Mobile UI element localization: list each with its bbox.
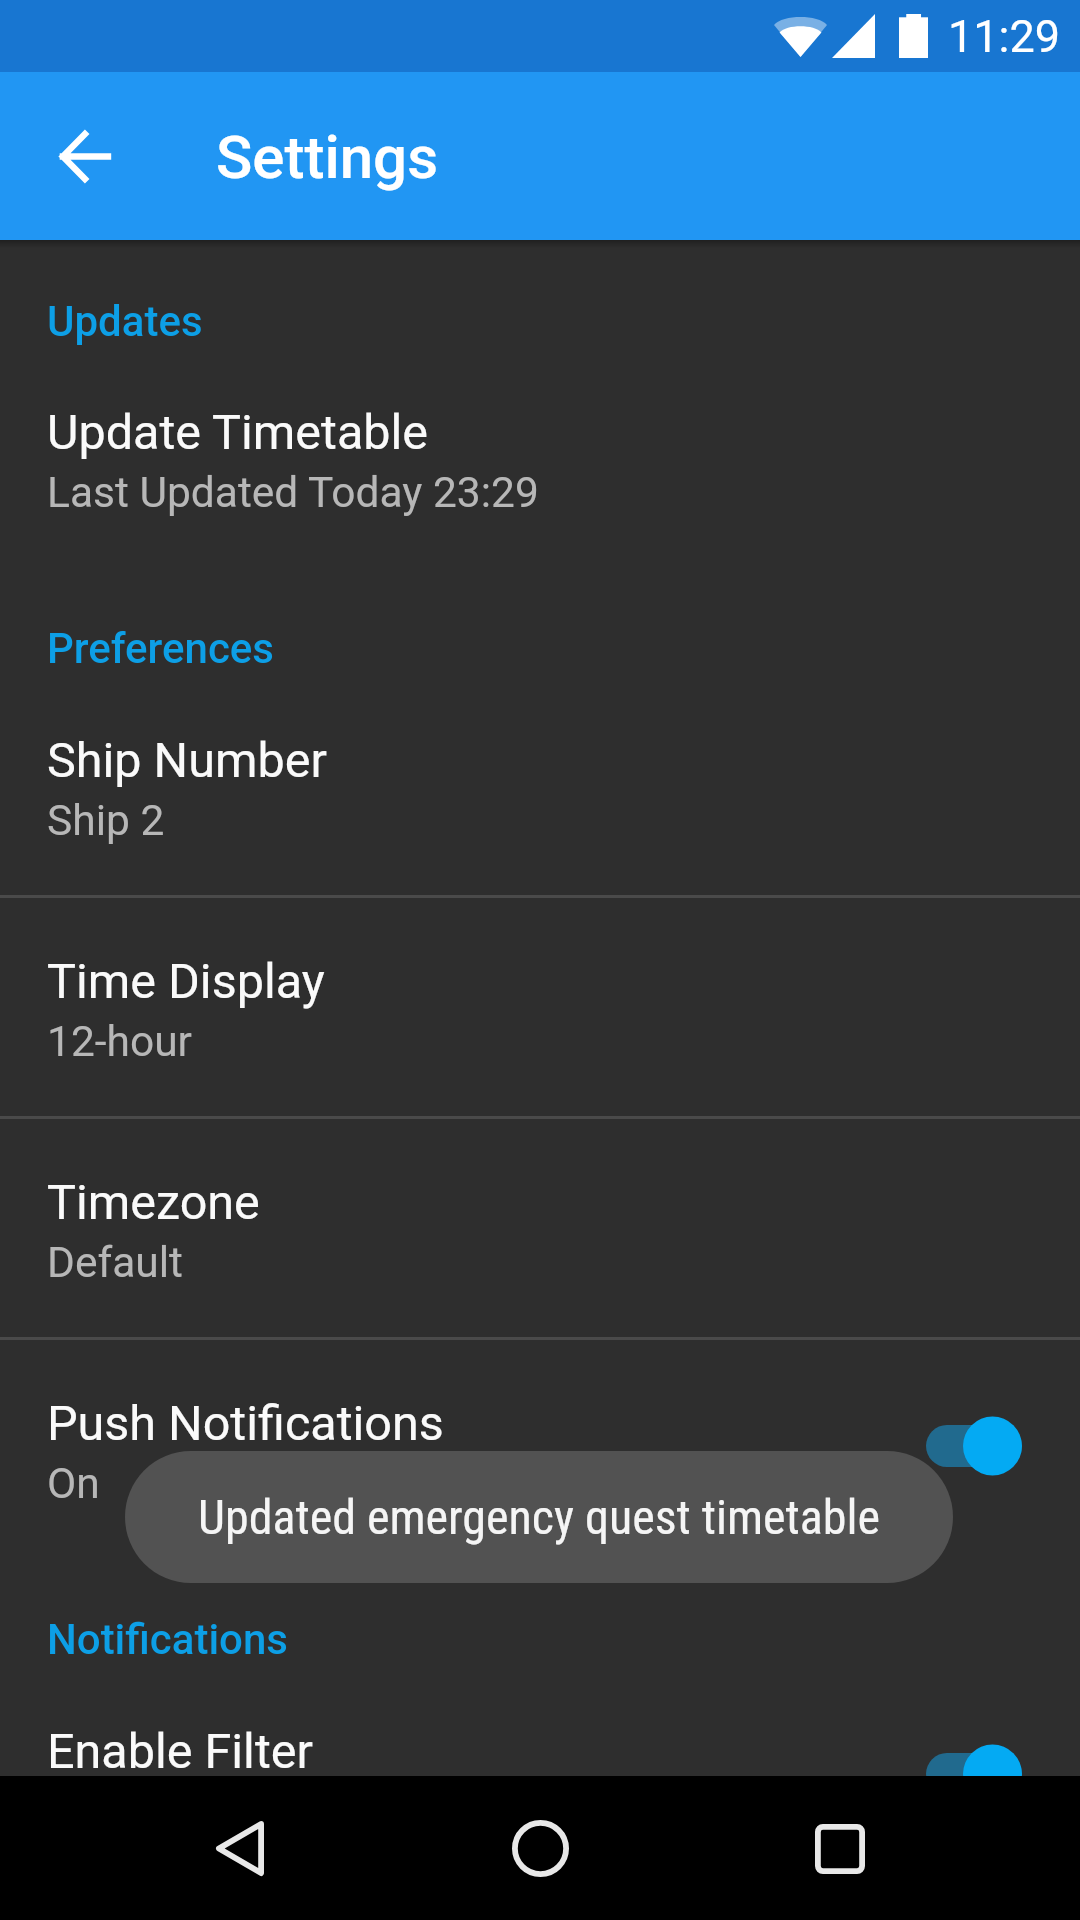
staticText: Updated emergency quest timetable <box>198 1489 880 1545</box>
staticText: Default <box>47 1238 183 1288</box>
staticText: On <box>47 1459 100 1509</box>
button[interactable]: Toggle <box>926 1416 1022 1476</box>
staticText: Ship Number <box>47 732 327 789</box>
button[interactable]: Back <box>42 114 126 198</box>
button[interactable]: Ship Number <box>0 674 1080 895</box>
button[interactable]: Push Notifications <box>0 1337 1080 1558</box>
button[interactable]: Recents <box>768 1777 912 1920</box>
button[interactable]: Toggle <box>926 1744 1022 1804</box>
button[interactable]: Back <box>168 1776 312 1920</box>
button[interactable]: Home <box>468 1776 612 1920</box>
staticText: Settings <box>216 122 439 192</box>
staticText: Push Notifications <box>47 1395 444 1452</box>
staticText: Timezone <box>47 1174 260 1231</box>
staticText: Ship 2 <box>47 796 165 846</box>
staticText: Last Updated Today 23:29 <box>47 468 539 518</box>
staticText: Preferences <box>47 624 274 673</box>
button[interactable]: Timezone <box>0 1116 1080 1337</box>
button[interactable]: Enable Filter <box>0 1665 1080 1886</box>
staticText: 12-hour <box>47 1017 192 1067</box>
staticText: Updates <box>47 297 203 346</box>
staticText: Update Timetable <box>47 404 429 461</box>
staticText: Notifications <box>47 1615 288 1664</box>
button[interactable]: Time Display <box>0 895 1080 1116</box>
staticText: Time Display <box>47 953 325 1010</box>
staticText: Enable Filter <box>47 1723 313 1780</box>
button[interactable]: Update Timetable <box>0 346 1080 567</box>
staticText: 11:29 <box>948 10 1061 63</box>
